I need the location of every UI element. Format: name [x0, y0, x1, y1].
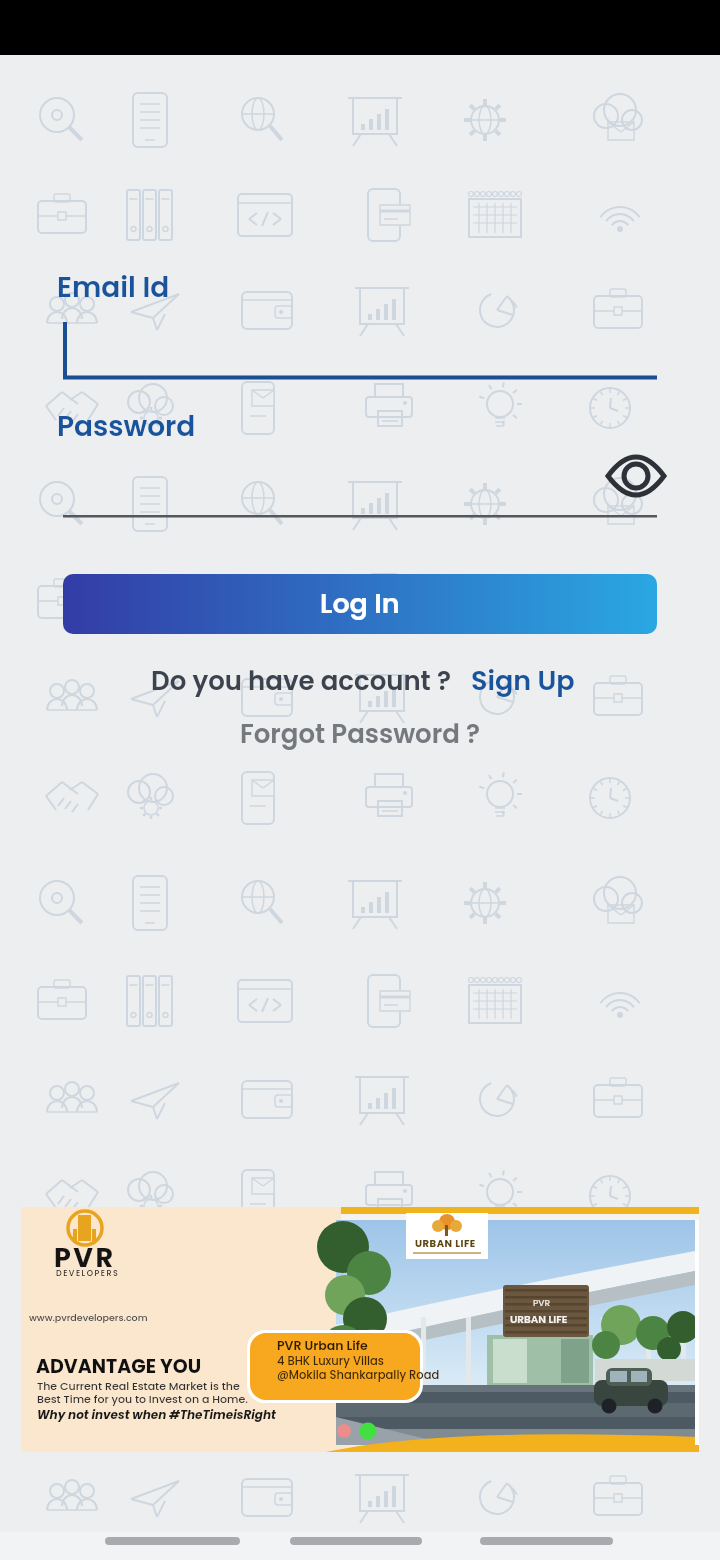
button[interactable] — [600, 448, 672, 504]
button[interactable]: Sign Up — [465, 658, 569, 696]
staticText: PVR — [54, 1239, 116, 1277]
button[interactable] — [63, 310, 657, 380]
button[interactable]: Log In — [63, 574, 657, 634]
staticText: Do you have account ? — [151, 663, 451, 699]
staticText: @Mokila Shankarpally Road — [277, 1367, 440, 1383]
staticText: PVR — [533, 1297, 551, 1310]
staticText: Best Time for you to Invest on a Home. — [37, 1391, 248, 1406]
staticText: www.pvrdevelopers.com — [29, 1311, 148, 1324]
staticText: ADVANTAGE YOU — [36, 1353, 202, 1380]
staticText: PVR Urban Life — [277, 1337, 368, 1354]
staticText: Email Id — [57, 268, 170, 307]
staticText: DEVELOPERS — [56, 1268, 120, 1279]
staticText: Sign Up — [471, 662, 575, 700]
button[interactable]: PVR — [21, 1207, 699, 1452]
staticText: Forgot Password ? — [240, 716, 480, 752]
staticText: URBAN LIFE — [415, 1236, 476, 1250]
staticText: The Current Real Estate Market is the — [37, 1378, 240, 1393]
staticText: Password — [57, 407, 196, 446]
staticText: Log In — [320, 585, 400, 623]
button[interactable]: Forgot Password ? — [232, 711, 472, 747]
staticText: 4 BHK Luxury Villas — [277, 1353, 384, 1369]
staticText: URBAN LIFE — [510, 1312, 568, 1327]
staticText: Why not invest when #TheTimeisRight — [37, 1406, 276, 1423]
button[interactable] — [63, 455, 657, 517]
